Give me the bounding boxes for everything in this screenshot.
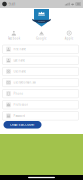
button[interactable]: user@domain.xxx: [2, 78, 78, 87]
staticText: Username: [13, 70, 26, 73]
button[interactable]: Phone: [2, 89, 78, 98]
staticText: ACADEMY: [38, 20, 45, 22]
button[interactable]: Facebook: [0, 31, 28, 40]
button[interactable]: Username: [2, 67, 78, 76]
staticText: Last name: [13, 59, 25, 62]
button[interactable]: CREATE ACCOUNT: [3, 121, 41, 128]
button[interactable]: First name: [2, 45, 78, 53]
staticText: 9:41: [8, 1, 15, 7]
staticText: Apple: [65, 37, 74, 40]
staticText: Password: [13, 114, 25, 118]
staticText: user@domain.xxx: [13, 81, 35, 84]
staticText: Google: [36, 37, 47, 40]
button[interactable]: Google: [28, 31, 55, 40]
button[interactable]: Last name: [2, 56, 78, 65]
button[interactable]: Profession: [2, 100, 78, 109]
staticText: Facebook: [8, 37, 20, 40]
staticText: CREATE ACCOUNT: [10, 123, 35, 126]
staticText: First name: [13, 47, 26, 51]
button[interactable]: Apple: [55, 31, 83, 40]
staticText: Phone: [13, 92, 23, 95]
staticText: Profession: [13, 103, 28, 106]
button[interactable]: Password: [2, 112, 78, 120]
